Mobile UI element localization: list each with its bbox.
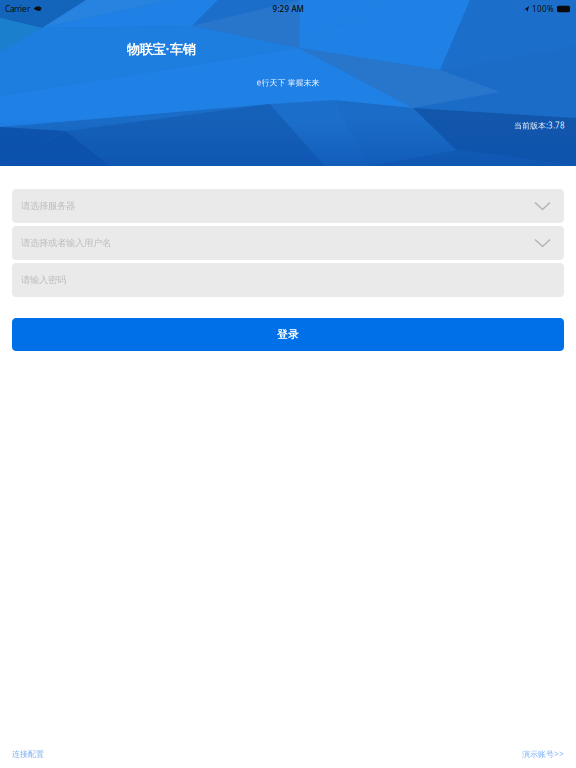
button[interactable]: 演示账号>> xyxy=(522,749,564,759)
staticText: 演示账号>> xyxy=(522,749,564,759)
staticText: e行天下 掌握未来 xyxy=(256,77,319,88)
staticText: 9:29 AM xyxy=(272,4,303,14)
staticText: 登录 xyxy=(277,328,299,341)
staticText: 当前版本:3.78 xyxy=(514,120,565,131)
staticText: 请选择服务器 xyxy=(21,200,75,212)
staticText: 物联宝·车销 xyxy=(126,40,195,58)
staticText: 连接配置 xyxy=(12,749,44,759)
staticText: Carrier xyxy=(5,4,30,14)
staticText: 请选择或者输入用户名 xyxy=(21,237,111,249)
staticText: 请输入密码 xyxy=(21,274,66,286)
button[interactable]: 请选择服务器 xyxy=(12,189,564,223)
staticText: 100% xyxy=(532,4,554,14)
button[interactable]: 登录 xyxy=(12,318,564,351)
button[interactable]: 请选择或者输入用户名 xyxy=(12,226,564,260)
button[interactable]: 连接配置 xyxy=(12,749,44,759)
